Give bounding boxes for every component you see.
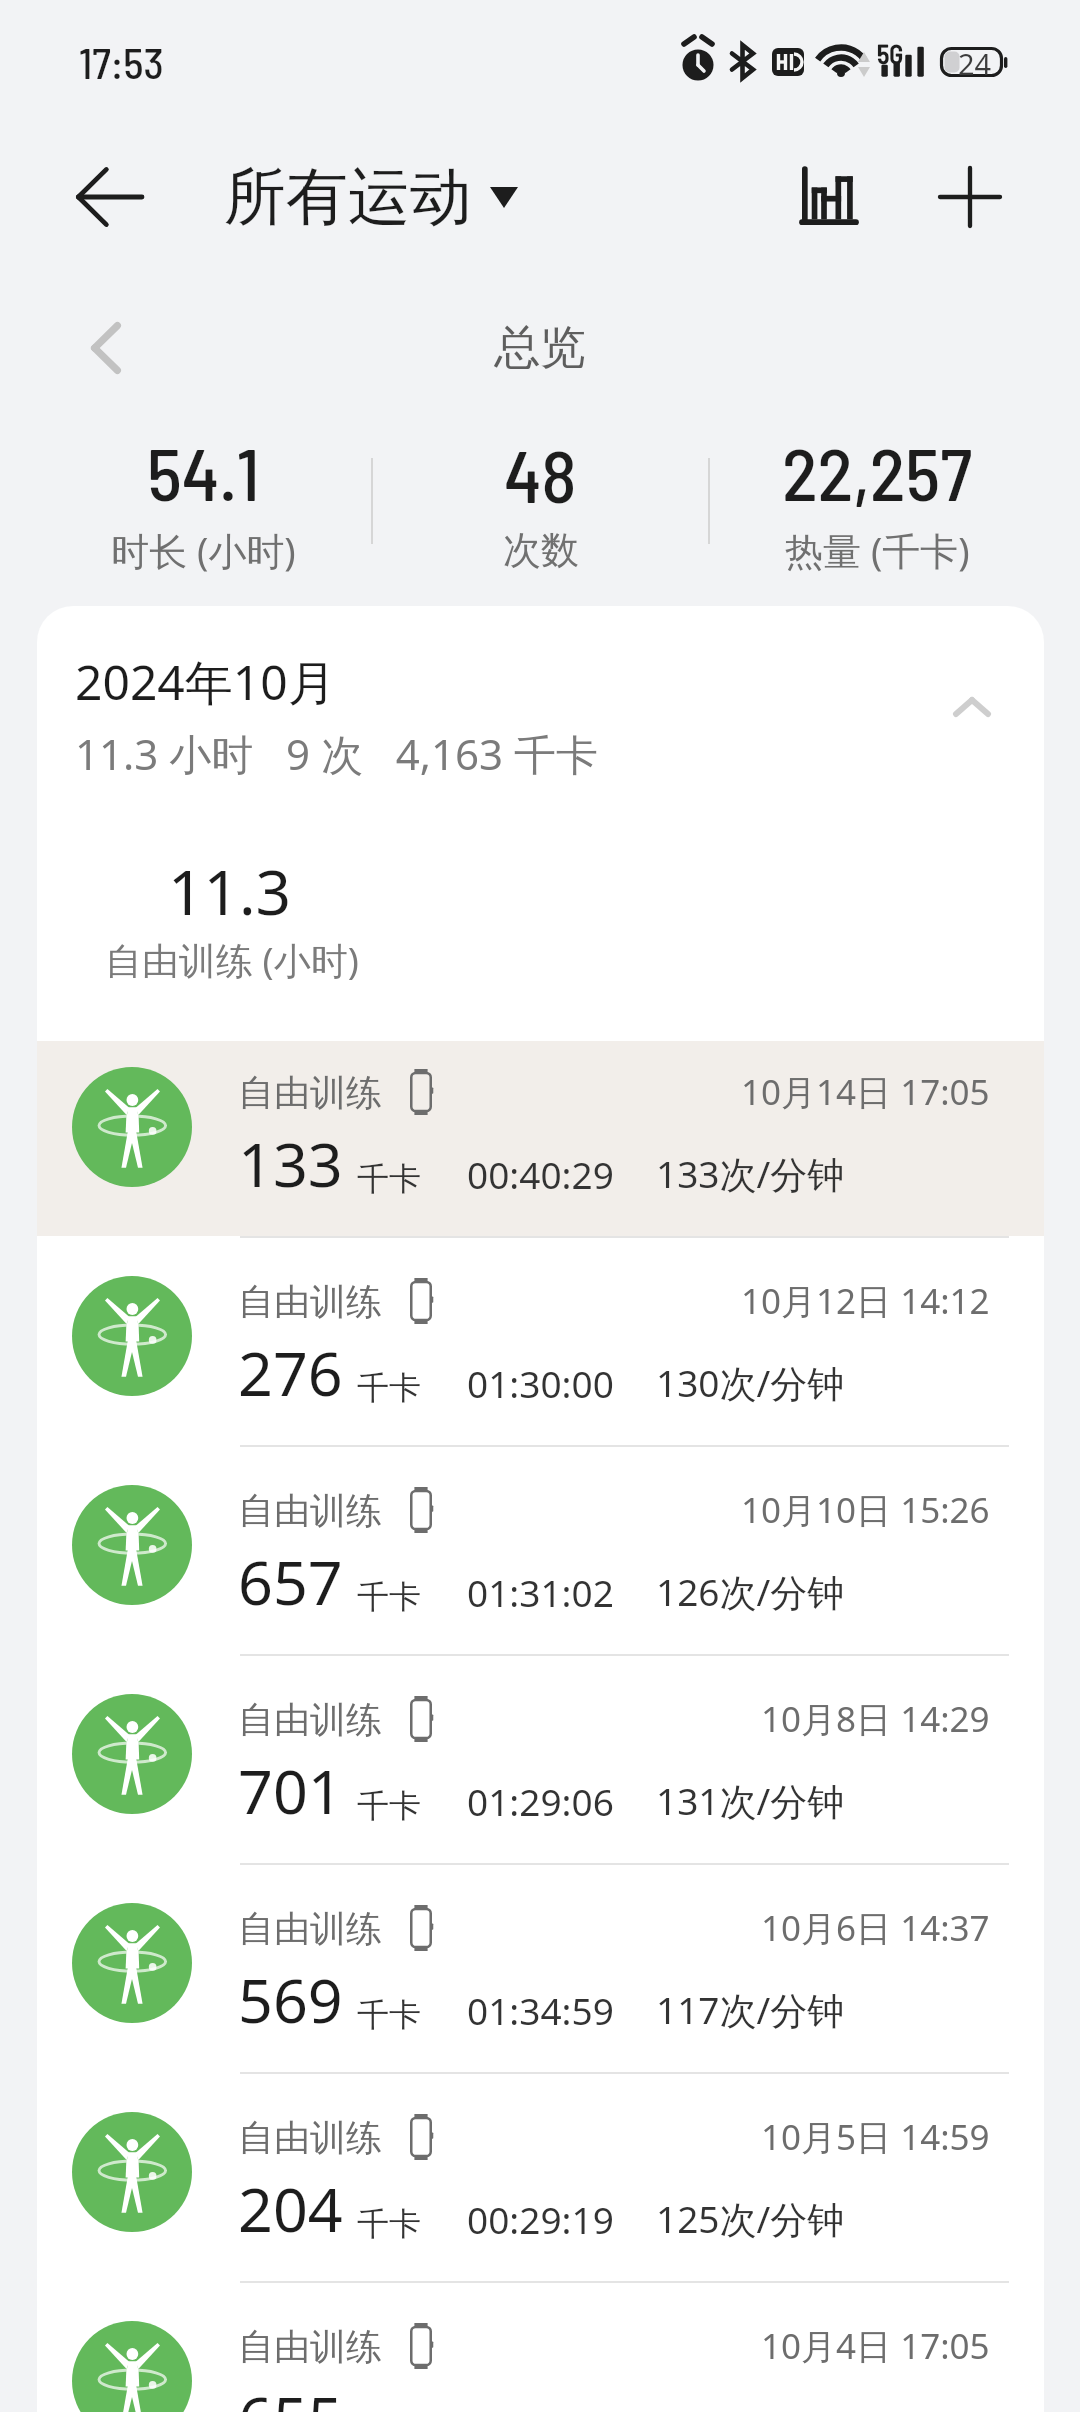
button[interactable]: 48 [373, 429, 708, 574]
staticText: 01:30:00 [467, 1358, 614, 1408]
staticText: 千卡 [357, 2204, 421, 2244]
button[interactable]: 22,257 [710, 427, 1045, 576]
button[interactable]: 自由训练 [37, 2072, 1044, 2281]
staticText: 701 [238, 1749, 343, 1832]
staticText: 自由训练 [238, 2324, 382, 2369]
staticText: 204 [238, 2167, 343, 2250]
staticText: 10月6日 14:37 [761, 1904, 990, 1952]
staticText: 131次/分钟 [656, 1775, 845, 1826]
staticText: 所有运动 [224, 158, 472, 236]
button[interactable]: 所有运动 [210, 158, 532, 236]
button[interactable]: 自由训练 [37, 1445, 1044, 1654]
staticText: 自由训练 [238, 1906, 382, 1951]
button[interactable]: 自由训练 [37, 1863, 1044, 2072]
staticText: 自由训练 [238, 1697, 382, 1742]
staticText: 54.1 [147, 427, 260, 516]
staticText: 133 [238, 1122, 343, 1205]
button[interactable]: 自由训练 [37, 1236, 1044, 1445]
staticText: 11.3 [168, 849, 292, 933]
staticText: 276 [238, 1331, 343, 1414]
staticText: 时长 (小时) [111, 524, 296, 576]
staticText: 655 [238, 2376, 343, 2412]
staticText: 01:29:06 [467, 1776, 614, 1826]
staticText: 17:53 [79, 36, 164, 88]
staticText: 5G [877, 38, 904, 69]
staticText: 10月10日 15:26 [741, 1486, 990, 1534]
button[interactable]: 2024年10月 [37, 606, 1044, 824]
staticText: 133次/分钟 [656, 1148, 845, 1199]
staticText: 自由训练 [238, 2115, 382, 2160]
staticText: 125次/分钟 [656, 2193, 845, 2244]
staticText: 2024年10月 [75, 649, 336, 715]
button[interactable]: Previous month [58, 300, 154, 396]
staticText: 次数 [503, 526, 579, 574]
staticText: 130次/分钟 [656, 1357, 845, 1408]
staticText: 千卡 [357, 1577, 421, 1617]
staticText: 自由训练 [238, 1070, 382, 1115]
staticText: 11.3 小时 9 次 4,163 千卡 [75, 725, 598, 782]
button[interactable]: 自由训练 [37, 1027, 1044, 1236]
staticText: 10月14日 17:05 [741, 1068, 990, 1116]
staticText: 10月8日 14:29 [761, 1695, 990, 1743]
button[interactable]: 自由训练 [37, 2281, 1044, 2412]
staticText: 千卡 [357, 1159, 421, 1199]
staticText: 117次/分钟 [656, 1984, 845, 2035]
staticText: 自由训练 [238, 1279, 382, 1324]
staticText: 千卡 [357, 1995, 421, 2035]
staticText: 01:31:02 [467, 1567, 614, 1617]
button[interactable]: Statistics [775, 143, 883, 251]
button[interactable]: Add [916, 143, 1024, 251]
staticText: 热量 (千卡) [785, 524, 970, 576]
staticText: 总览 [494, 319, 586, 377]
staticText: 657 [238, 1540, 343, 1623]
staticText: 10月12日 14:12 [741, 1277, 990, 1325]
staticText: 126次/分钟 [656, 1566, 845, 1617]
staticText: 24 [958, 44, 992, 83]
staticText: 10月5日 14:59 [761, 2113, 990, 2161]
staticText: 10月4日 17:05 [761, 2322, 990, 2370]
staticText: 00:40:29 [467, 1149, 614, 1199]
staticText: 千卡 [357, 1786, 421, 1826]
staticText: 569 [238, 1958, 343, 2041]
staticText: 01:34:59 [467, 1985, 614, 2035]
staticText: 00:29:19 [467, 2194, 614, 2244]
button[interactable]: 54.1 [35, 427, 371, 576]
button[interactable]: 自由训练 [37, 1654, 1044, 1863]
staticText: 自由训练 (小时) [105, 934, 359, 985]
staticText: 自由训练 [238, 1488, 382, 1533]
staticText: 22,257 [782, 427, 973, 516]
button[interactable]: Back [50, 138, 168, 256]
staticText: 千卡 [357, 1368, 421, 1408]
staticText: 48 [504, 429, 577, 518]
